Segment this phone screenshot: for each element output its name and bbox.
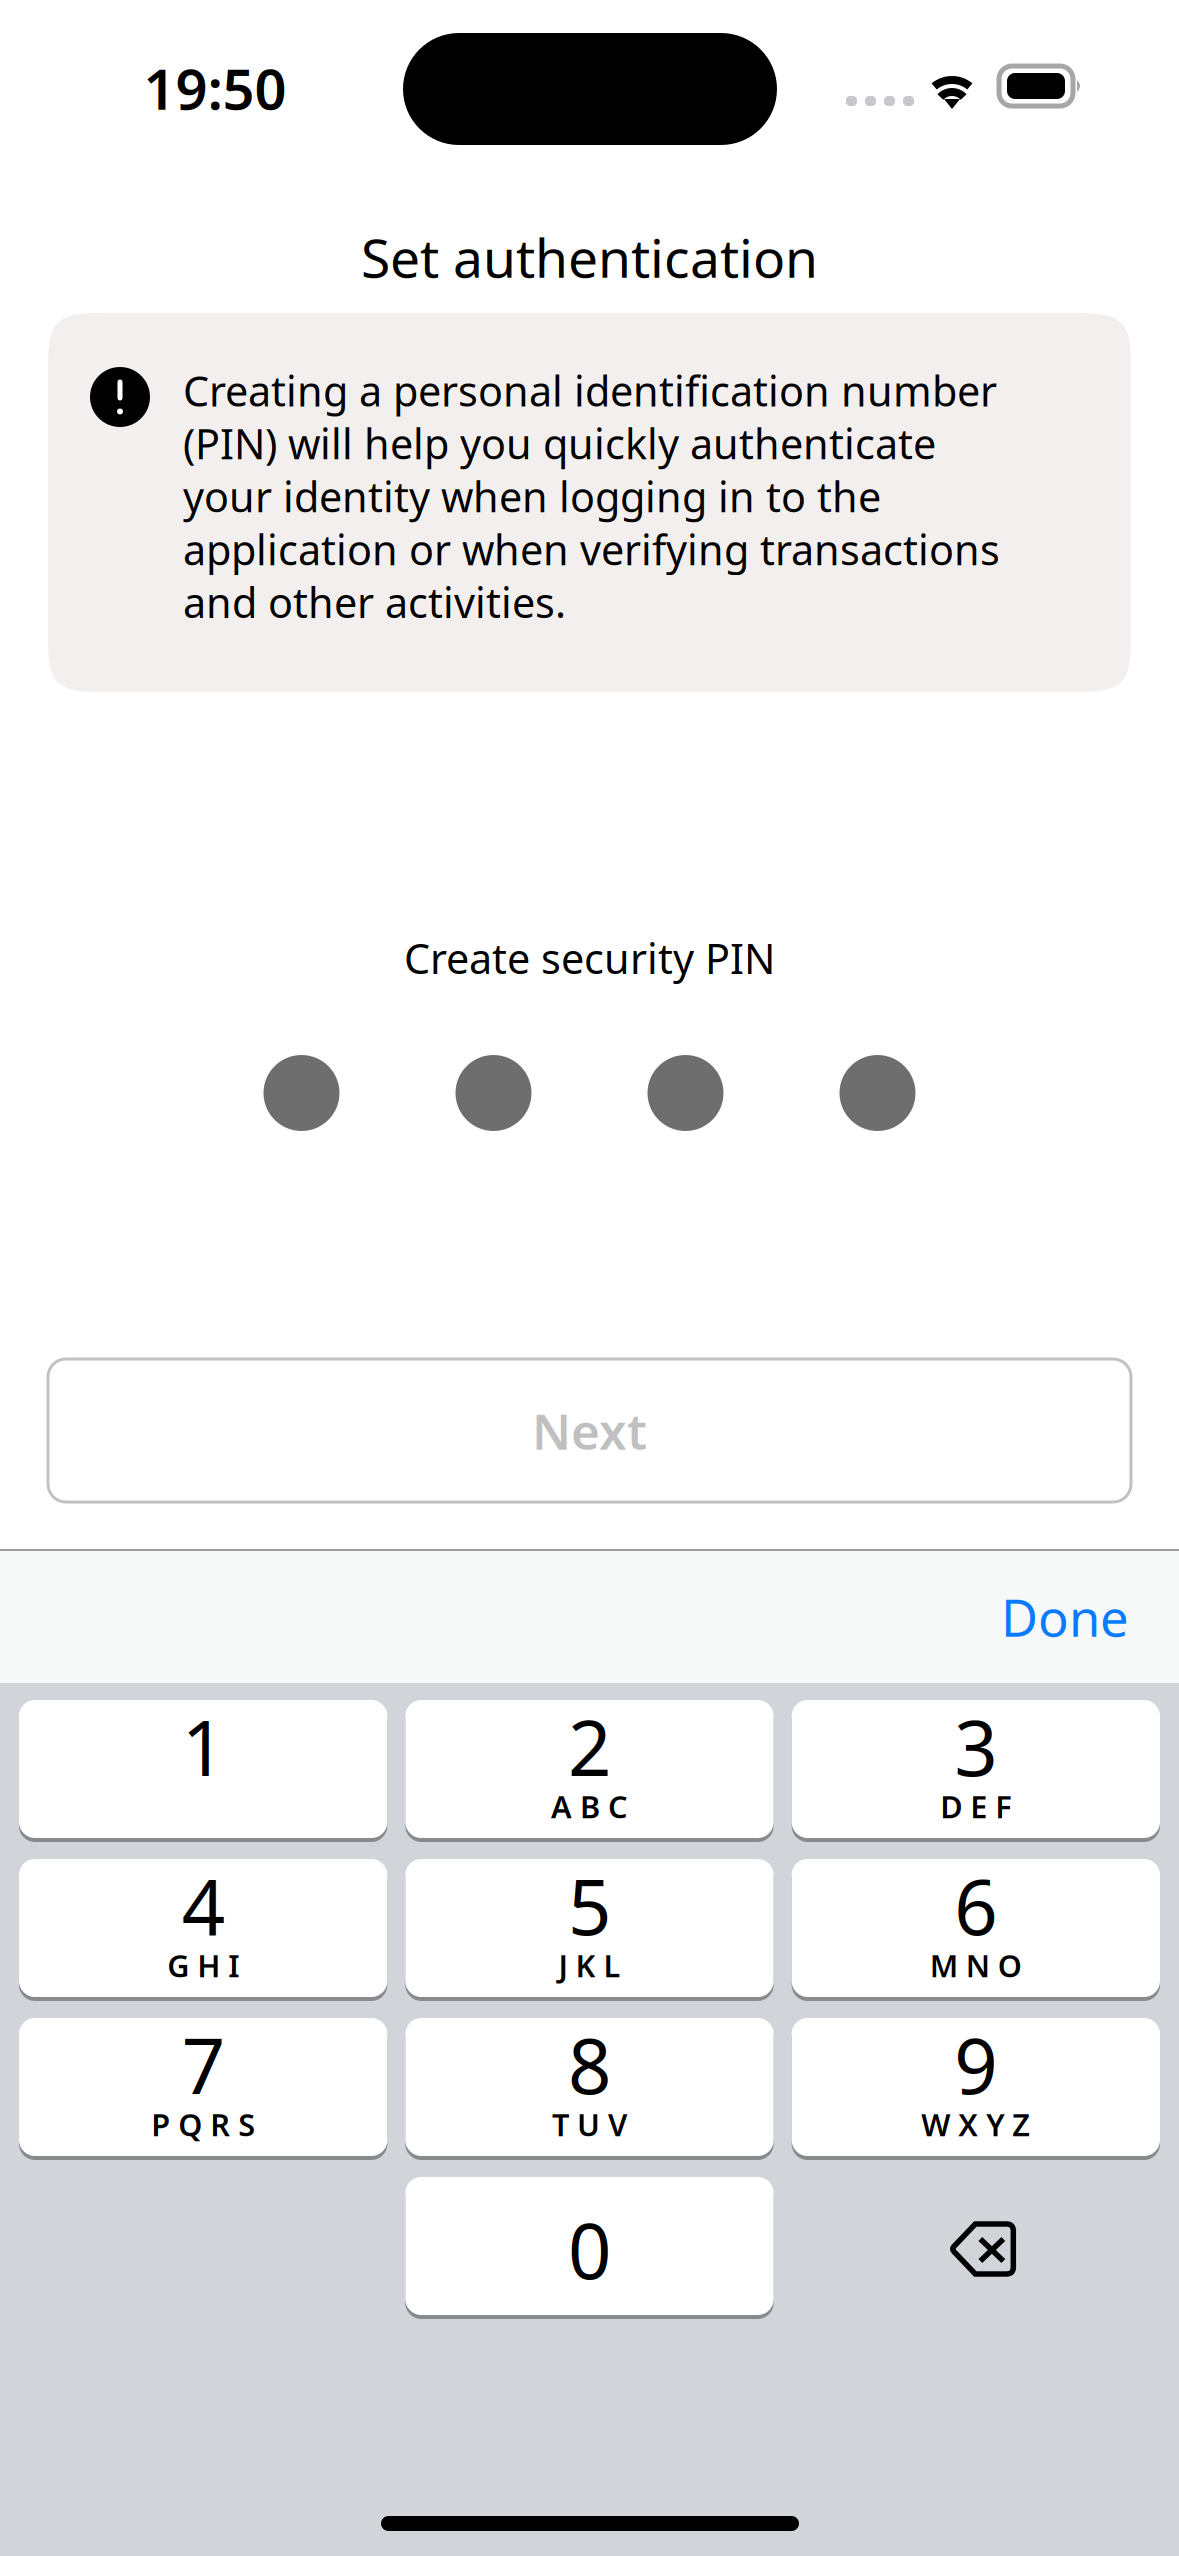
staticText: J K L <box>558 1945 620 1986</box>
staticText: Done <box>1001 1583 1129 1651</box>
button[interactable]: 7 <box>19 2018 387 2156</box>
button[interactable]: Done <box>971 1551 1159 1683</box>
button[interactable]: 0 <box>405 2177 774 2315</box>
staticText: M N O <box>930 1945 1022 1986</box>
button[interactable]: 8 <box>405 2018 774 2156</box>
staticText: 3 <box>954 1696 997 1797</box>
button[interactable]: Delete <box>792 2177 1160 2315</box>
staticText: 5 <box>568 1855 611 1956</box>
staticText: 1 <box>182 1696 225 1797</box>
staticText: G H I <box>167 1945 239 1986</box>
button[interactable]: 3 <box>792 1700 1160 1838</box>
button[interactable]: 5 <box>405 1859 774 1997</box>
button[interactable]: 9 <box>792 2018 1160 2156</box>
staticText: 9 <box>954 2014 997 2115</box>
staticText: 7 <box>182 2014 225 2115</box>
staticText: 0 <box>568 2199 611 2300</box>
button[interactable]: 6 <box>792 1859 1160 1997</box>
button[interactable]: 1 <box>19 1700 387 1838</box>
staticText: Set authentication <box>361 222 818 292</box>
button[interactable]: 2 <box>405 1700 774 1838</box>
staticText: 2 <box>568 1696 611 1797</box>
button[interactable]: Next <box>48 1359 1131 1502</box>
staticText: Next <box>532 1398 647 1463</box>
staticText: Create security PIN <box>404 931 775 985</box>
staticText: T U V <box>552 2104 627 2145</box>
staticText: P Q R S <box>151 2104 255 2145</box>
staticText: 8 <box>568 2014 611 2115</box>
staticText: 6 <box>954 1855 997 1956</box>
staticText: 4 <box>182 1855 225 1956</box>
staticText: 19:50 <box>143 51 286 125</box>
staticText: A B C <box>551 1786 628 1827</box>
staticText: Creating a personal identification numbe… <box>183 363 1000 629</box>
staticText: D E F <box>940 1786 1011 1827</box>
button[interactable]: 4 <box>19 1859 387 1997</box>
staticText: W X Y Z <box>921 2104 1030 2145</box>
